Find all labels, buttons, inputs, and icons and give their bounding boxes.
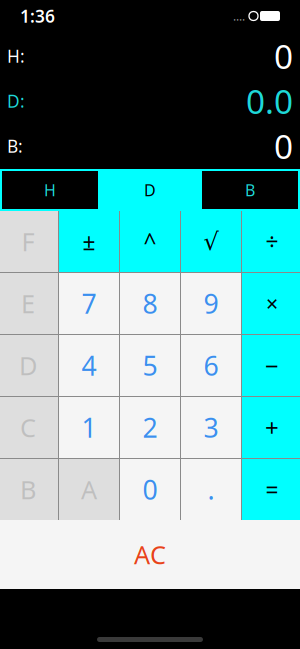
staticText: H: — [7, 44, 25, 67]
button[interactable]: E — [0, 273, 58, 334]
staticText: 9 — [203, 286, 218, 321]
button[interactable]: A — [59, 459, 119, 520]
staticText: D — [19, 349, 37, 382]
staticText: C — [20, 411, 36, 444]
staticText: 0 — [274, 124, 293, 168]
button[interactable]: 3 — [181, 397, 241, 458]
button[interactable]: 5 — [120, 335, 180, 396]
button[interactable]: ÷ — [242, 211, 300, 272]
staticText: 1:36 — [20, 4, 55, 27]
button[interactable]: 1 — [59, 397, 119, 458]
button[interactable]: F — [0, 211, 58, 272]
button[interactable]: 8 — [120, 273, 180, 334]
staticText: + — [265, 412, 279, 443]
staticText: B: — [7, 134, 23, 157]
staticText: H — [44, 179, 56, 201]
staticText: F — [21, 225, 34, 258]
button[interactable]: H — [0, 169, 100, 211]
button[interactable]: B — [200, 169, 300, 211]
button[interactable]: = — [242, 459, 300, 520]
button[interactable]: B — [0, 459, 58, 520]
button[interactable]: . — [181, 459, 241, 520]
staticText: 5 — [142, 348, 157, 383]
staticText: .... — [233, 8, 245, 24]
button[interactable]: × — [242, 273, 300, 334]
staticText: E — [21, 287, 35, 320]
staticText: ± — [82, 226, 95, 256]
staticText: 1 — [81, 410, 96, 445]
button[interactable]: D — [0, 335, 58, 396]
staticText: D — [144, 179, 156, 201]
staticText: × — [266, 289, 278, 318]
button[interactable]: 9 — [181, 273, 241, 334]
button[interactable]: AC — [0, 520, 300, 589]
staticText: AC — [134, 538, 166, 571]
button[interactable]: D — [100, 169, 200, 211]
staticText: 2 — [142, 410, 157, 445]
staticText: 7 — [81, 286, 96, 321]
staticText: 0 — [274, 34, 293, 78]
button[interactable]: − — [242, 335, 300, 396]
staticText: 6 — [203, 348, 218, 383]
staticText: 8 — [142, 286, 157, 321]
staticText: − — [265, 350, 279, 381]
button[interactable]: 6 — [181, 335, 241, 396]
staticText: B — [245, 179, 255, 201]
staticText: . — [207, 472, 214, 507]
button[interactable]: ± — [59, 211, 119, 272]
button[interactable]: + — [242, 397, 300, 458]
staticText: √ — [203, 228, 218, 255]
staticText: 4 — [81, 348, 96, 383]
button[interactable]: √ — [181, 211, 241, 272]
staticText: ^ — [143, 226, 156, 256]
button[interactable]: 4 — [59, 335, 119, 396]
staticText: 3 — [203, 410, 218, 445]
staticText: B — [20, 473, 36, 506]
staticText: A — [81, 473, 97, 506]
staticText: D: — [7, 89, 25, 112]
button[interactable]: ^ — [120, 211, 180, 272]
button[interactable]: C — [0, 397, 58, 458]
staticText: 0 — [142, 472, 157, 507]
button[interactable]: 7 — [59, 273, 119, 334]
staticText: = — [265, 474, 278, 504]
button[interactable]: 2 — [120, 397, 180, 458]
button[interactable]: 0 — [120, 459, 180, 520]
staticText: 0.0 — [246, 79, 293, 123]
staticText: ÷ — [265, 226, 278, 256]
